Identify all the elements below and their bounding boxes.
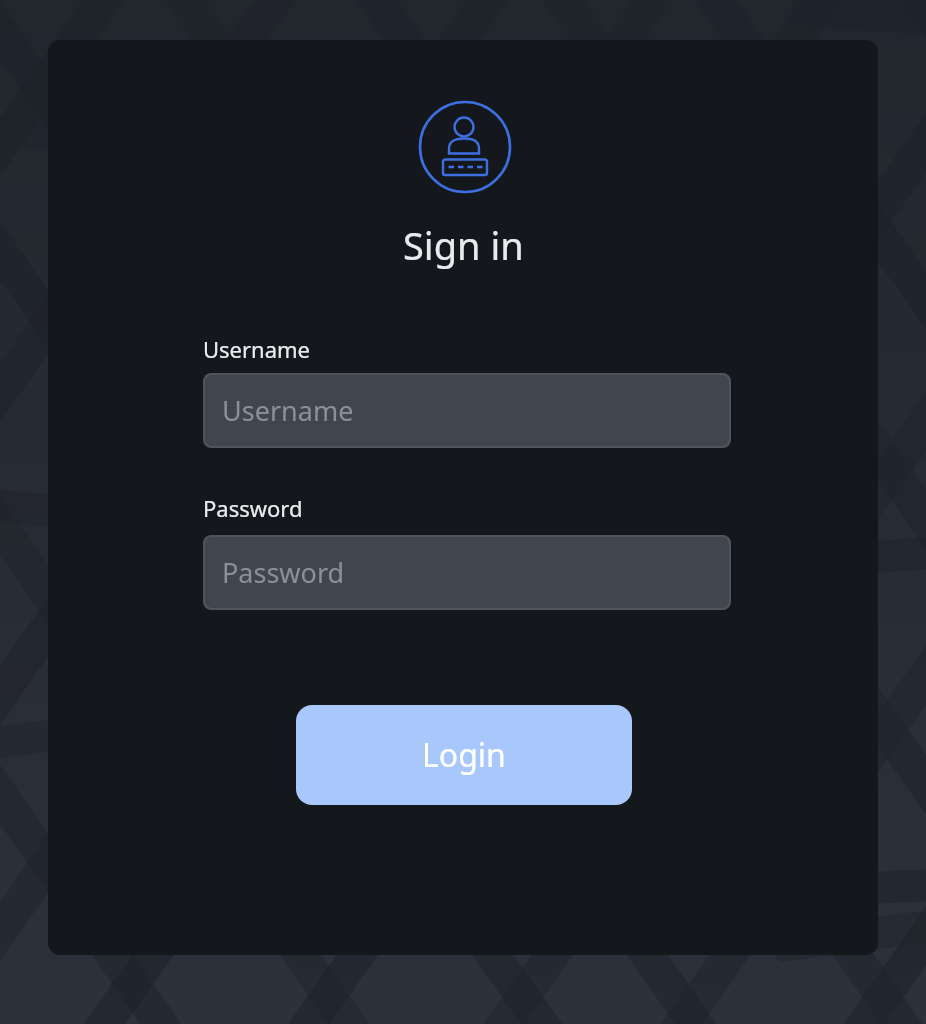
staticText: Password bbox=[222, 554, 345, 591]
staticText: Username bbox=[203, 334, 311, 364]
staticText: Password bbox=[203, 493, 303, 523]
button[interactable]: Login bbox=[296, 705, 632, 805]
staticText: Username bbox=[222, 392, 354, 429]
button[interactable]: Password bbox=[203, 535, 731, 610]
staticText: Sign in bbox=[403, 219, 524, 269]
staticText: Login bbox=[422, 733, 506, 777]
button[interactable]: Username bbox=[203, 373, 731, 448]
